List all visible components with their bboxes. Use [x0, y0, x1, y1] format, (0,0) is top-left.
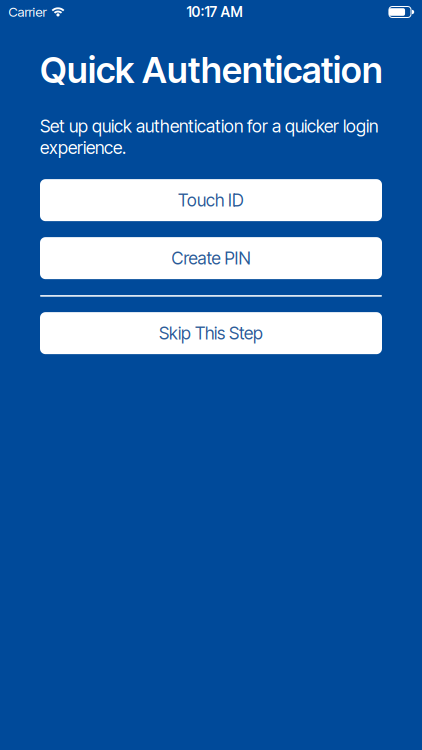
button[interactable]: Touch ID: [40, 179, 382, 221]
staticText: Set up quick authentication for a quicke…: [40, 116, 378, 158]
staticText: Carrier: [8, 4, 46, 20]
button[interactable]: Create PIN: [40, 237, 382, 279]
staticText: Quick Authentication: [40, 48, 383, 92]
button[interactable]: Skip This Step: [40, 312, 382, 354]
staticText: Skip This Step: [159, 323, 263, 344]
staticText: Create PIN: [171, 248, 250, 269]
staticText: Touch ID: [178, 190, 244, 211]
staticText: 10:17 AM: [186, 3, 242, 20]
